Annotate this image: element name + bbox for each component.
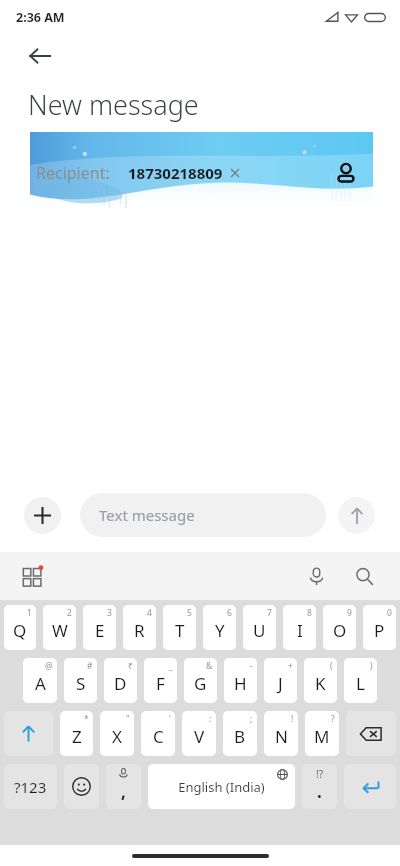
staticText: R <box>134 619 145 642</box>
button[interactable]: Choose contact <box>329 156 363 190</box>
staticText: . <box>317 780 322 803</box>
staticText: Recipient: <box>36 162 110 184</box>
staticText: E <box>95 619 105 642</box>
button[interactable]: J <box>264 658 297 703</box>
button[interactable]: S <box>64 658 97 703</box>
button[interactable]: N <box>264 711 298 756</box>
staticText: B <box>234 725 246 748</box>
staticText: & <box>206 660 213 672</box>
staticText: V <box>194 725 205 748</box>
button[interactable]: Back <box>20 36 60 76</box>
staticText: 0 <box>387 607 392 619</box>
staticText: 7 <box>267 607 272 619</box>
button[interactable]: Shift <box>4 711 53 756</box>
staticText: L <box>356 672 365 695</box>
staticText: X <box>112 725 122 748</box>
staticText: Text message <box>99 505 195 525</box>
button[interactable]: F <box>144 658 177 703</box>
button[interactable]: Q <box>4 605 36 650</box>
staticText: * <box>84 713 89 725</box>
button[interactable]: Search <box>344 556 384 596</box>
staticText: 6 <box>227 607 232 619</box>
button[interactable]: English (India) <box>148 764 295 809</box>
button[interactable]: W <box>43 605 76 650</box>
staticText: F <box>156 672 165 695</box>
button[interactable]: X <box>100 711 134 756</box>
staticText: ) <box>370 660 373 672</box>
button[interactable]: Enter <box>344 764 396 809</box>
button[interactable]: I <box>283 605 316 650</box>
staticText: K <box>315 672 326 695</box>
staticText: # <box>87 660 93 672</box>
staticText: D <box>114 672 127 695</box>
staticText: ; <box>250 713 253 725</box>
staticText: P <box>374 619 385 642</box>
staticText: A <box>35 672 46 695</box>
staticText: _ <box>169 660 173 672</box>
button[interactable]: B <box>223 711 257 756</box>
staticText: ?123 <box>14 777 47 797</box>
staticText: 8 <box>307 607 312 619</box>
staticText: 2:36 AM <box>16 9 65 26</box>
staticText: !? <box>316 767 324 781</box>
staticText: J <box>278 672 283 695</box>
staticText: 5 <box>187 607 192 619</box>
staticText: Z <box>72 725 82 748</box>
button[interactable]: E <box>83 605 116 650</box>
button[interactable]: O <box>323 605 356 650</box>
button[interactable]: Y <box>203 605 236 650</box>
button[interactable]: R <box>123 605 156 650</box>
button[interactable]: Voice input <box>296 556 336 596</box>
button[interactable]: G <box>184 658 217 703</box>
staticText: English (India) <box>178 778 265 796</box>
staticText: ' <box>169 713 171 725</box>
button[interactable]: L <box>344 658 377 703</box>
staticText: 9 <box>347 607 352 619</box>
staticText: C <box>153 725 164 748</box>
staticText: I <box>297 619 303 642</box>
button[interactable]: Comma and voice <box>106 764 141 809</box>
staticText: + <box>288 660 293 672</box>
button[interactable]: Backspace <box>346 711 396 756</box>
staticText: ( <box>330 660 333 672</box>
button[interactable]: P <box>363 605 396 650</box>
staticText: ? <box>331 713 335 725</box>
button[interactable]: Remove recipient <box>228 166 242 180</box>
staticText: S <box>76 672 86 695</box>
staticText: G <box>194 672 207 695</box>
staticText: " <box>126 713 130 725</box>
staticText: 4 <box>147 607 152 619</box>
button[interactable]: Text message <box>80 493 326 537</box>
staticText: U <box>253 619 266 642</box>
button[interactable]: H <box>224 658 257 703</box>
button[interactable]: Keyboard tools <box>14 557 52 595</box>
staticText: , <box>121 780 126 803</box>
staticText: - <box>250 660 253 672</box>
button[interactable]: Symbols <box>4 764 57 809</box>
button[interactable]: Emoji <box>64 764 99 809</box>
button[interactable]: V <box>182 711 216 756</box>
staticText: 18730218809 <box>128 163 223 183</box>
button[interactable]: Add attachment <box>24 497 61 534</box>
button[interactable]: Recipient: <box>0 130 400 216</box>
button[interactable]: Send <box>338 497 375 534</box>
button[interactable]: Period <box>302 764 337 809</box>
staticText: New message <box>28 86 199 123</box>
staticText: 3 <box>107 607 112 619</box>
button[interactable]: M <box>305 711 339 756</box>
staticText: M <box>314 725 330 748</box>
button[interactable]: D <box>104 658 137 703</box>
button[interactable]: T <box>163 605 196 650</box>
staticText: 1 <box>27 607 32 619</box>
staticText: H <box>234 672 247 695</box>
button[interactable]: Z <box>60 711 93 756</box>
staticText: : <box>209 713 212 725</box>
button[interactable]: A <box>23 658 57 703</box>
staticText: Q <box>13 619 27 642</box>
button[interactable]: C <box>141 711 175 756</box>
staticText: ! <box>291 713 294 725</box>
button[interactable]: U <box>243 605 276 650</box>
staticText: W <box>52 619 68 642</box>
staticText: Y <box>215 619 225 642</box>
button[interactable]: K <box>304 658 337 703</box>
